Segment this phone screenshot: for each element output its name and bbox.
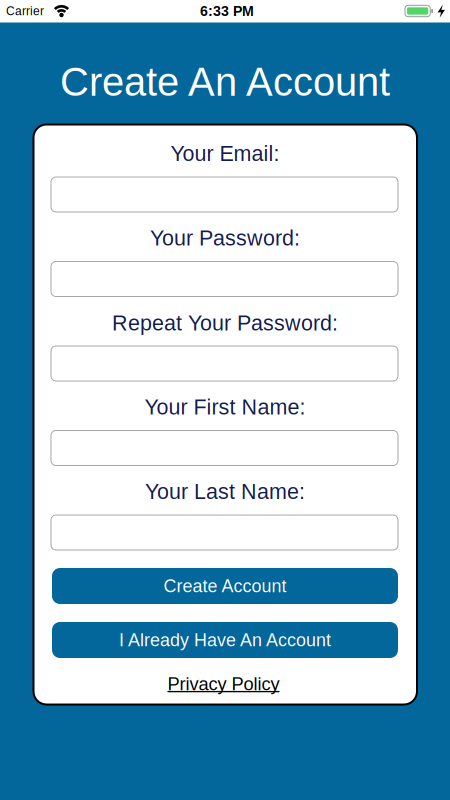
staticText: Your Last Name:	[145, 479, 305, 503]
staticText: Repeat Your Password:	[112, 311, 338, 335]
staticText: Create An Account	[60, 60, 390, 104]
staticText: 6:33 PM	[200, 3, 254, 19]
button[interactable]: Create Account	[52, 568, 398, 604]
button[interactable]: Privacy Policy	[167, 674, 279, 694]
button[interactable]: I Already Have An Account	[52, 622, 398, 658]
staticText: Create Account	[163, 576, 286, 596]
staticText: Your Password:	[150, 226, 300, 250]
staticText: Your Email:	[170, 141, 279, 165]
staticText: Your First Name:	[144, 395, 305, 419]
staticText: Carrier	[6, 4, 44, 18]
staticText: I Already Have An Account	[119, 630, 331, 650]
staticText: Privacy Policy	[167, 674, 279, 694]
